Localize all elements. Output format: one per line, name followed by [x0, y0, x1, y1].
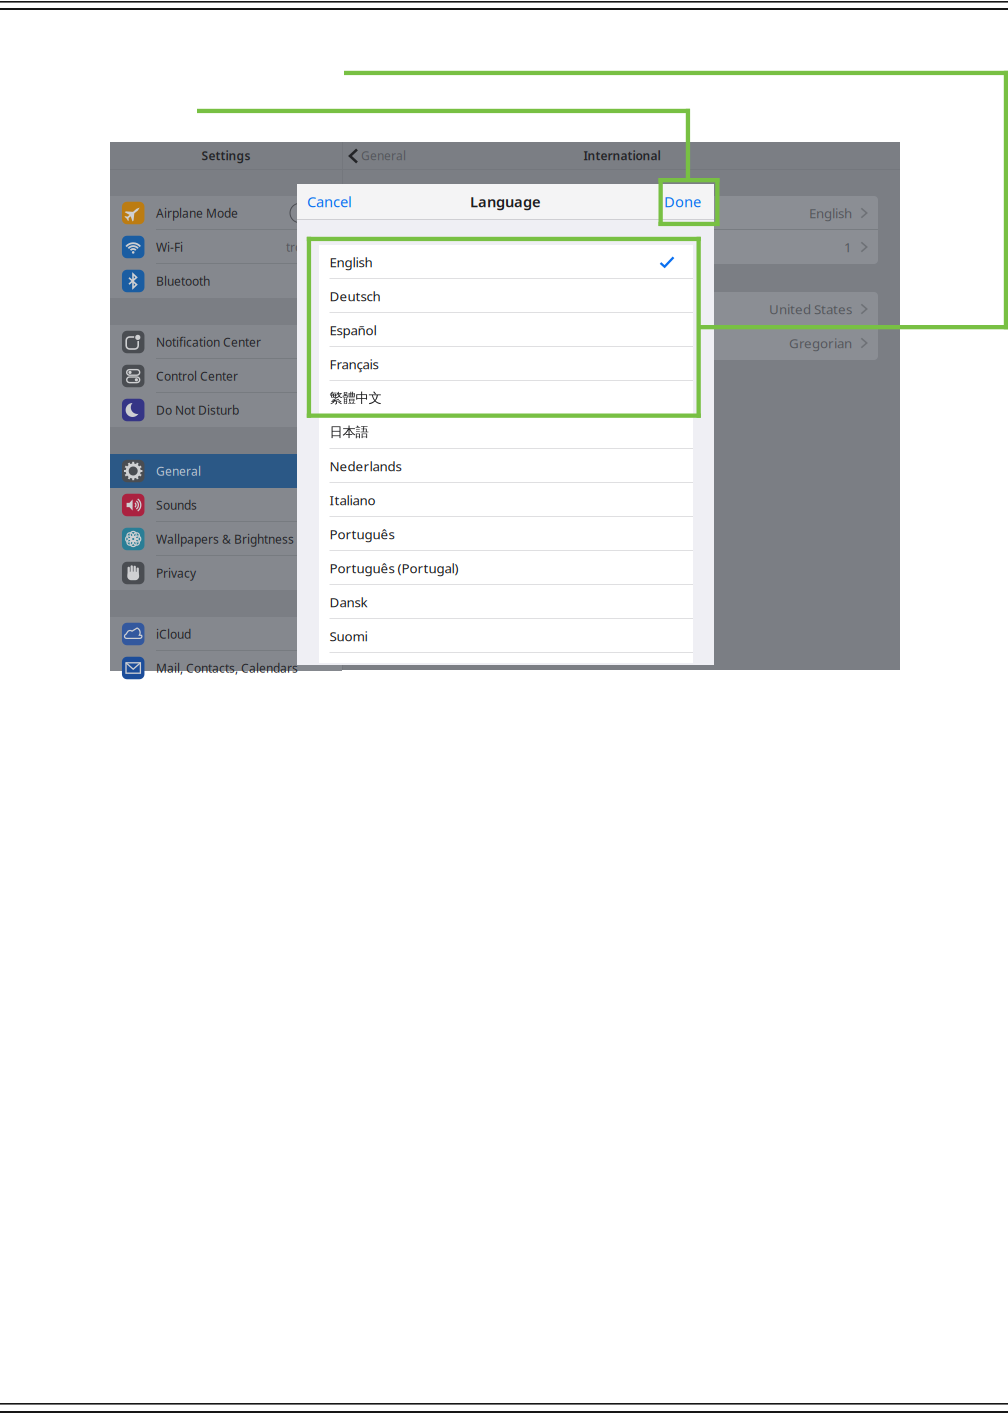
staticText: Privacy — [156, 565, 196, 581]
button[interactable]: Dansk — [319, 585, 693, 619]
button[interactable]: iCloud — [110, 617, 342, 651]
button[interactable]: Português — [319, 517, 693, 551]
button[interactable]: General — [110, 454, 342, 488]
staticText: Do Not Disturb — [156, 402, 239, 418]
button[interactable]: Control Center — [110, 359, 342, 393]
staticText: Notification Center — [156, 334, 261, 350]
staticText: Dansk — [329, 593, 367, 611]
staticText: United States — [769, 300, 852, 318]
staticText: Sounds — [156, 497, 197, 513]
staticText: iCloud — [156, 626, 191, 642]
staticText: Deutsch — [329, 287, 380, 305]
staticText: Settings — [201, 147, 250, 163]
button[interactable]: Deutsch — [319, 279, 693, 313]
button[interactable]: Français — [319, 347, 693, 381]
button[interactable]: 繁體中文 — [319, 381, 693, 415]
button[interactable]: Suomi — [319, 619, 693, 653]
button[interactable]: Español — [319, 313, 693, 347]
staticText: International — [583, 147, 660, 163]
staticText: 繁體中文 — [329, 390, 381, 406]
staticText: Mail, Contacts, Calendars — [156, 660, 298, 676]
button[interactable]: Português (Portugal) — [319, 551, 693, 585]
staticText: English — [329, 253, 372, 271]
staticText: Gregorian — [789, 334, 852, 352]
staticText: Wallpapers & Brightness — [156, 531, 294, 547]
button[interactable]: Gregorian — [360, 326, 878, 360]
staticText: Airplane Mode — [156, 205, 238, 221]
staticText: Português (Portugal) — [329, 559, 458, 577]
staticText: Nederlands — [329, 457, 401, 475]
button[interactable]: Notification Center — [110, 325, 342, 359]
button[interactable]: English — [360, 196, 878, 230]
staticText: General — [361, 147, 406, 163]
staticText: Español — [329, 321, 376, 339]
staticText: Italiano — [329, 491, 375, 509]
staticText: General — [156, 463, 201, 479]
button[interactable]: Done — [641, 184, 701, 219]
button[interactable]: Wi-Fi — [110, 230, 342, 264]
button[interactable]: Mail, Contacts, Calendars — [110, 651, 342, 685]
staticText: Suomi — [329, 627, 367, 645]
staticText: Language — [470, 192, 541, 211]
staticText: Bluetooth — [156, 273, 210, 289]
staticText: Français — [329, 355, 378, 373]
button[interactable]: Bluetooth — [110, 264, 342, 298]
staticText: Cancel — [307, 192, 352, 211]
staticText: 1 — [844, 238, 852, 256]
button[interactable]: English — [319, 245, 693, 279]
button[interactable]: Wallpapers & Brightness — [110, 522, 342, 556]
button[interactable]: Cancel — [307, 184, 377, 219]
button[interactable]: United States — [360, 292, 878, 326]
staticText: Português — [329, 525, 394, 543]
button[interactable]: Airplane Mode — [110, 196, 342, 230]
button[interactable]: Italiano — [319, 483, 693, 517]
button[interactable]: Privacy — [110, 556, 342, 590]
staticText: Done — [664, 192, 701, 211]
button[interactable]: Sounds — [110, 488, 342, 522]
button[interactable]: Nederlands — [319, 449, 693, 483]
staticText: 日本語 — [329, 424, 368, 440]
button[interactable]: 日本語 — [319, 415, 693, 449]
button[interactable]: 1 — [360, 230, 878, 264]
staticText: Wi-Fi — [156, 239, 183, 255]
staticText: English — [809, 204, 852, 222]
button[interactable]: Do Not Disturb — [110, 393, 342, 427]
staticText: Control Center — [156, 368, 238, 384]
staticText: tronic — [286, 239, 318, 255]
